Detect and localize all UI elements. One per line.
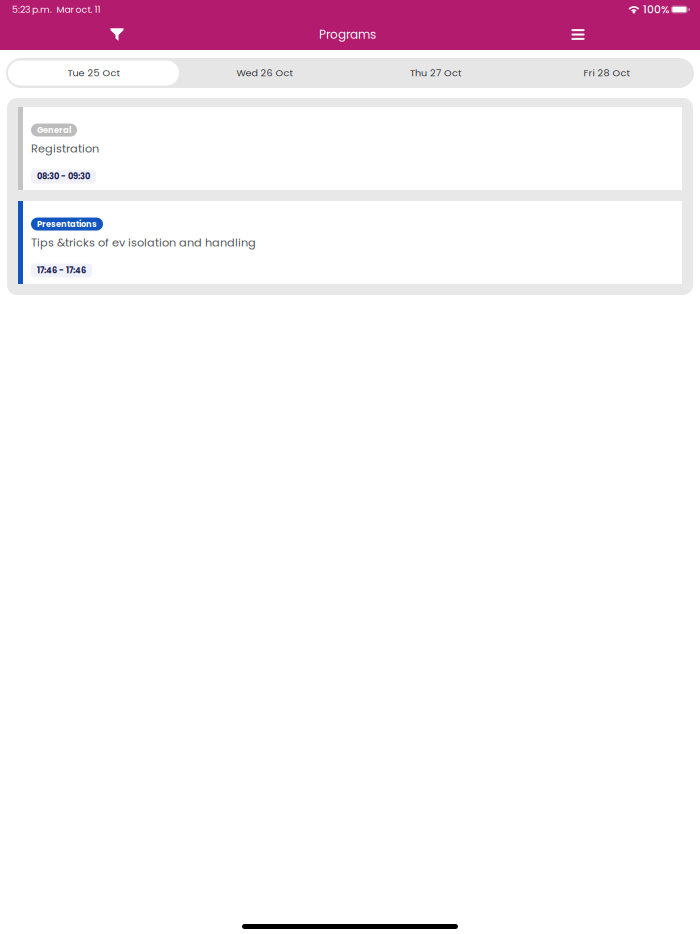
staticText: Mar oct. 11 [56,3,100,16]
button[interactable]: Tue 25 Oct [8,60,179,85]
staticText: Wed 26 Oct [236,66,292,80]
staticText: Thu 27 Oct [410,66,461,80]
staticText: Tips &tricks of ev isolation and handlin… [31,235,256,250]
staticText: 17:46 - 17:46 [37,265,86,276]
staticText: General [37,124,71,136]
button[interactable]: Fri 28 Oct [521,60,692,85]
staticText: Programs [319,26,376,43]
button[interactable]: Wed 26 Oct [179,60,350,85]
staticText: Fri 28 Oct [583,66,629,80]
button[interactable]: General [18,107,682,190]
staticText: Tue 25 Oct [67,66,119,80]
button[interactable]: Presentations [18,201,682,284]
staticText: Registration [31,141,99,156]
staticText: 100% [643,2,669,17]
staticText: 08:30 - 09:30 [37,171,90,182]
button[interactable]: Menu [556,19,600,50]
staticText: 5:23 p.m. [12,3,52,16]
button[interactable]: Filter [95,19,139,50]
button[interactable]: Thu 27 Oct [350,60,521,85]
staticText: Presentations [37,218,97,230]
